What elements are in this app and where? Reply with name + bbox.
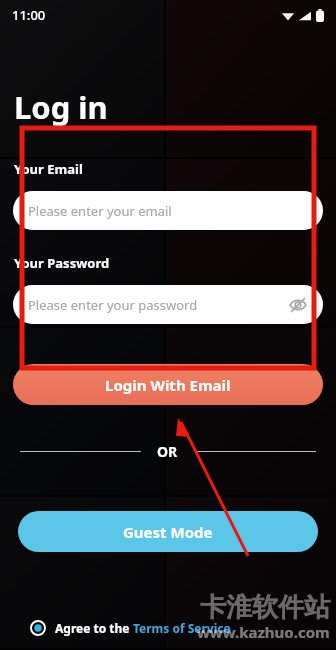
staticText: 卡淮软件站: [200, 591, 330, 624]
staticText: Log in: [14, 86, 108, 128]
staticText: Please enter your password: [28, 296, 198, 314]
button[interactable]: Please enter your password: [13, 285, 323, 324]
staticText: Please enter your email: [28, 202, 172, 220]
staticText: 11:00: [12, 6, 46, 24]
staticText: Login With Email: [105, 375, 231, 395]
staticText: Your Password: [14, 254, 110, 272]
button[interactable]: Please enter your email: [13, 191, 323, 230]
button[interactable]: Terms of Service: [133, 620, 231, 636]
button[interactable]: Agree toggle: [30, 620, 46, 636]
staticText: Guest Mode: [123, 522, 213, 542]
staticText: Your Email: [14, 160, 83, 178]
staticText: OR: [157, 442, 178, 461]
staticText: www.kazhuo.com: [197, 622, 330, 642]
staticText: Agree to the: [55, 620, 133, 636]
button[interactable]: Login With Email: [13, 364, 323, 405]
button[interactable]: Guest Mode: [18, 511, 318, 552]
button[interactable]: Show password: [287, 294, 309, 316]
